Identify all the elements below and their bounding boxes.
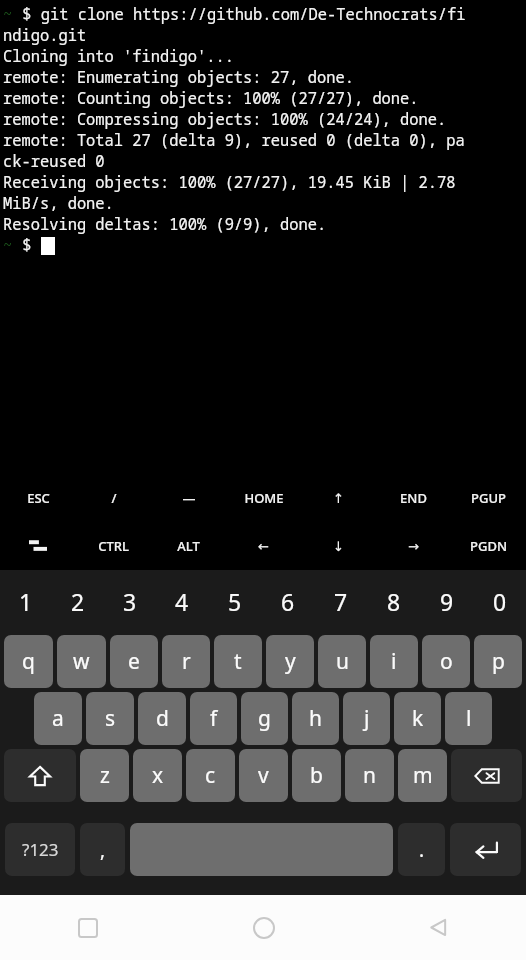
staticText: q [22,647,35,676]
button[interactable]: PGUP [451,474,526,522]
staticText: t [234,647,242,676]
staticText: 3 [123,586,137,617]
staticText: j [364,704,370,733]
staticText: , [100,837,106,863]
button[interactable]: a [34,692,82,745]
staticText: s [105,704,116,733]
staticText: h [309,704,322,733]
staticText: ALT [177,537,200,555]
button[interactable]: q [4,635,53,688]
staticText: remote: Total 27 (delta 9), reused 0 (de… [3,130,465,151]
button[interactable]: / [76,474,151,522]
button[interactable]: ESC [0,474,76,522]
button[interactable]: CTRL [76,522,151,570]
button[interactable]: y [266,635,314,688]
button[interactable]: 7 [314,570,367,633]
staticText: z [100,761,110,790]
staticText: — [182,489,196,507]
staticText: 1 [19,586,33,617]
staticText: HOME [244,489,284,507]
staticText: ↓ [333,539,344,554]
button[interactable]: m [398,749,447,802]
button[interactable]: f [190,692,237,745]
button[interactable]: x [133,749,182,802]
button[interactable]: Recents [0,895,176,960]
button[interactable]: Keyboard toggle [0,522,76,570]
button[interactable]: ↑ [301,474,376,522]
button[interactable]: s [86,692,134,745]
staticText: a [52,704,64,733]
button[interactable]: w [57,635,106,688]
button[interactable]: Enter [450,823,521,876]
staticText: x [152,761,164,790]
button[interactable]: — [151,474,226,522]
staticText: remote: Counting objects: 100% (27/27), … [3,88,419,109]
button[interactable]: c [186,749,235,802]
button[interactable]: → [376,522,451,570]
staticText: ← [258,539,269,554]
button[interactable]: , [80,823,125,876]
staticText: remote: Compressing objects: 100% (24/24… [3,109,447,130]
staticText: ck-reused 0 [3,151,105,172]
button[interactable]: h [292,692,339,745]
staticText: $ [13,235,41,256]
button[interactable]: END [376,474,451,522]
staticText: ESC [27,489,50,507]
button[interactable]: ALT [151,522,226,570]
button[interactable]: Back [351,895,526,960]
button[interactable]: v [239,749,288,802]
button[interactable]: ?123 [5,823,75,876]
button[interactable]: 2 [52,570,104,633]
staticText: ndigo.git [3,25,87,46]
button[interactable]: u [318,635,366,688]
button[interactable]: ↓ [301,522,376,570]
staticText: e [128,647,140,676]
button[interactable]: j [343,692,390,745]
button[interactable]: Home [176,895,351,960]
staticText: ~ [3,4,13,25]
button[interactable]: HOME [226,474,301,522]
staticText: Cloning into 'findigo'... [3,46,234,67]
staticText: d [156,704,169,733]
button[interactable]: 9 [420,570,473,633]
button[interactable]: z [80,749,129,802]
button[interactable]: . [398,823,445,876]
staticText: PGDN [470,537,507,555]
button[interactable]: 4 [156,570,208,633]
staticText: remote: Enumerating objects: 27, done. [3,67,354,88]
button[interactable]: PGDN [451,522,526,570]
button[interactable]: Shift [4,749,76,802]
button[interactable]: o [422,635,470,688]
button[interactable]: 6 [261,570,314,633]
button[interactable]: k [394,692,441,745]
button[interactable]: t [214,635,262,688]
button[interactable]: e [110,635,158,688]
button[interactable]: Space [130,823,393,876]
button[interactable]: r [162,635,210,688]
staticText: MiB/s, done. [3,193,114,214]
staticText: Resolving deltas: 100% (9/9), done. [3,214,327,235]
button[interactable]: b [292,749,341,802]
button[interactable]: n [345,749,394,802]
button[interactable]: g [241,692,288,745]
staticText: p [492,647,505,676]
staticText: 7 [334,586,348,617]
button[interactable]: i [370,635,418,688]
button[interactable]: 3 [104,570,156,633]
staticText: k [412,704,424,733]
button[interactable]: 5 [208,570,261,633]
button[interactable]: d [138,692,186,745]
button[interactable]: 0 [473,570,526,633]
staticText: / [111,489,117,507]
staticText: v [258,761,269,790]
button[interactable]: ← [226,522,301,570]
button[interactable]: l [445,692,492,745]
staticText: ?123 [22,838,59,861]
staticText: i [391,647,397,676]
button[interactable]: 8 [367,570,420,633]
staticText: l [466,704,472,733]
button[interactable]: Backspace [451,749,522,802]
button[interactable]: 1 [0,570,52,633]
staticText: 2 [71,586,85,617]
button[interactable]: p [474,635,522,688]
